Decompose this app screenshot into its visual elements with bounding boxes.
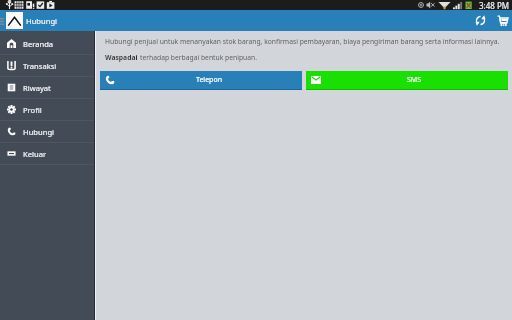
- button[interactable]: Menu: [0, 10, 6, 31]
- staticText: Hubungi: [26, 16, 58, 26]
- staticText: terhadap berbagai bentuk penipuan.: [140, 53, 258, 62]
- staticText: SMS: [407, 75, 422, 85]
- button[interactable]: Cart: [491, 10, 512, 31]
- staticText: Waspadai: [105, 53, 140, 62]
- staticText: Profil: [23, 105, 42, 115]
- staticText: 3:48 PM: [479, 0, 510, 10]
- button[interactable]: SMS: [306, 71, 508, 90]
- button[interactable]: Riwayat: [0, 77, 94, 98]
- button[interactable]: Transaksi: [0, 55, 94, 76]
- staticText: Telepon: [196, 75, 222, 85]
- staticText: Hubungi: [23, 127, 55, 137]
- button[interactable]: Refresh: [470, 10, 491, 31]
- staticText: Hubungi penjual untuk menanyakan stok ba…: [105, 37, 500, 46]
- staticText: Transaksi: [23, 61, 57, 71]
- button[interactable]: Profil: [0, 99, 94, 120]
- button[interactable]: Keluar: [0, 143, 94, 164]
- staticText: Riwayat: [23, 83, 51, 93]
- staticText: Beranda: [23, 39, 54, 49]
- button[interactable]: Beranda: [0, 33, 94, 54]
- button[interactable]: Telepon: [100, 71, 302, 90]
- button[interactable]: Hubungi: [0, 121, 94, 142]
- staticText: Keluar: [23, 149, 47, 159]
